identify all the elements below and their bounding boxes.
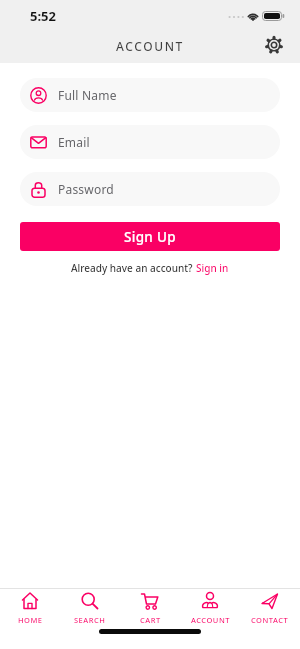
staticText: HOME [18,615,43,625]
staticText: Full Name [58,87,117,103]
staticText: Already have an account? [71,261,196,275]
staticText: CONTACT [251,615,289,625]
staticText: CART [140,615,161,625]
button[interactable] [263,34,285,56]
staticText: Sign Up [124,228,176,246]
staticText: SEARCH [74,615,106,625]
button[interactable]: Already have an account? [20,261,280,275]
staticText: 5:52 [30,7,56,25]
button[interactable]: Full Name [20,78,280,112]
staticText: ACCOUNT [116,38,184,54]
button[interactable]: CART [120,589,180,625]
staticText: Password [58,181,114,197]
button[interactable]: Password [20,172,280,206]
button[interactable]: Email [20,125,280,159]
staticText: Email [58,134,90,150]
button[interactable]: ACCOUNT [180,589,240,625]
staticText: ACCOUNT [191,615,230,625]
button[interactable]: SEARCH [60,589,120,625]
button[interactable]: CONTACT [240,589,300,625]
staticText: Sign in [196,261,229,275]
button[interactable]: HOME [0,589,60,625]
button[interactable]: Sign Up [20,222,280,251]
